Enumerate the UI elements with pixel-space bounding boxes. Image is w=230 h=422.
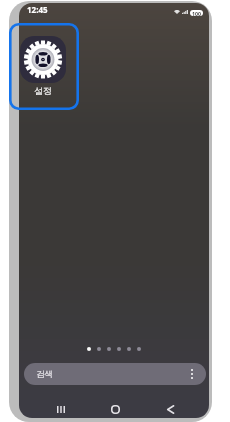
staticText: 12:45 <box>27 4 48 15</box>
button[interactable]: 설정 <box>20 36 66 100</box>
button[interactable]: Home <box>103 397 127 418</box>
button[interactable]: Recent apps <box>49 397 73 418</box>
staticText: 100 <box>192 10 201 16</box>
staticText: 검색 <box>36 369 53 380</box>
staticText: 설정 <box>34 85 52 96</box>
button[interactable]: 검색 <box>24 363 206 385</box>
button[interactable]: Back <box>158 397 182 418</box>
